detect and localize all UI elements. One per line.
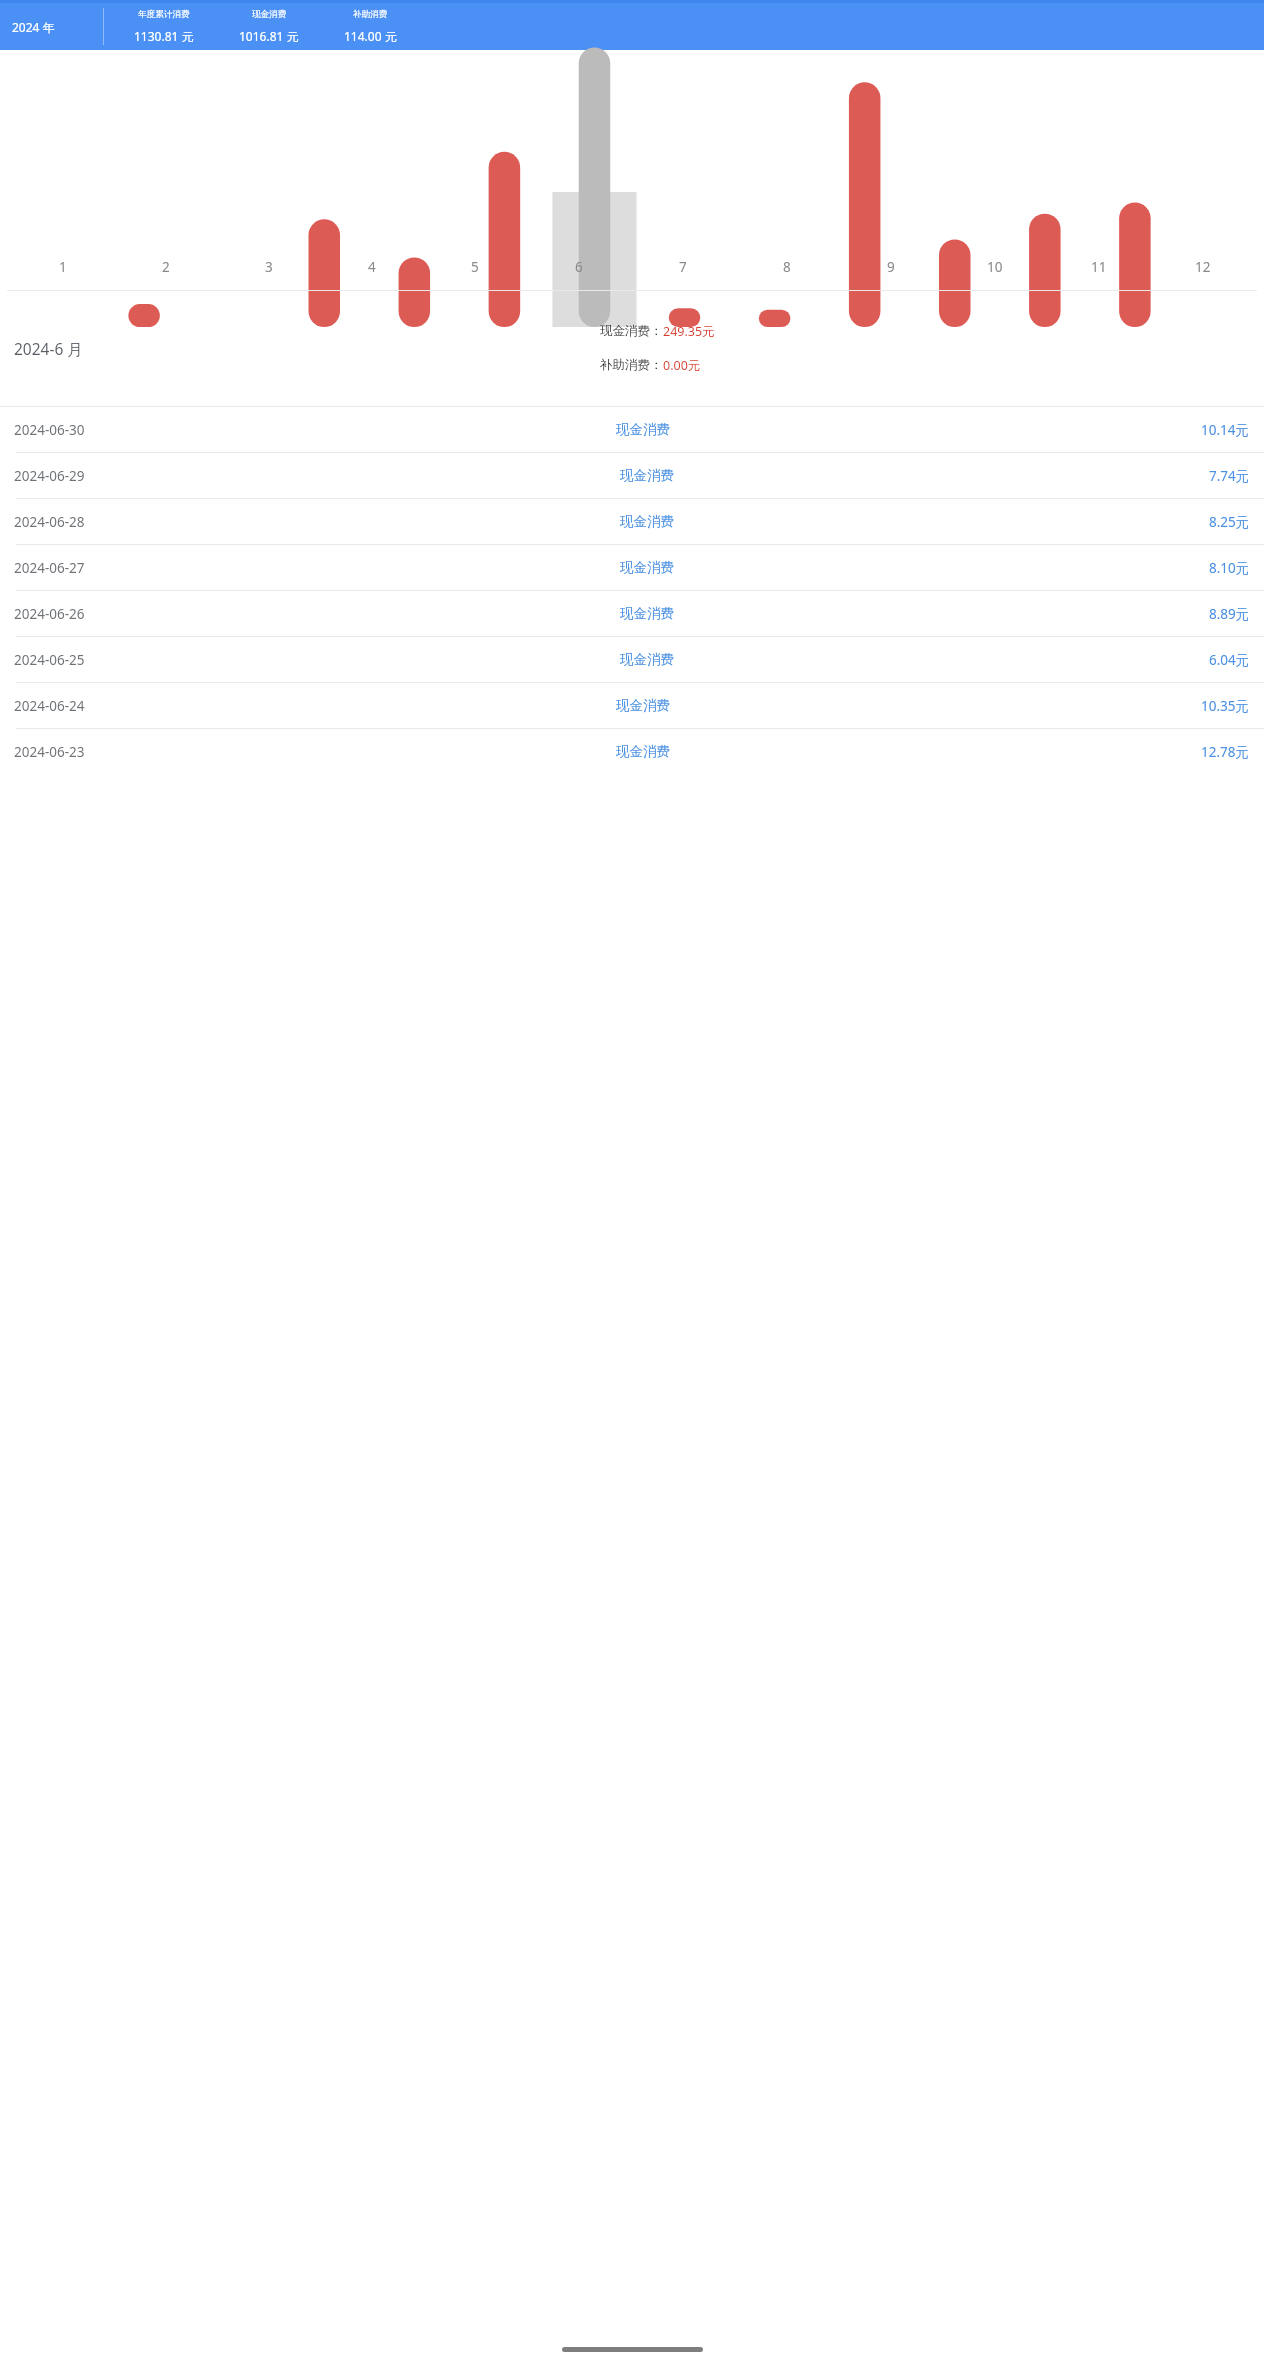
staticText: 1130.81 元: [134, 28, 194, 44]
staticText: 2024 年: [12, 19, 55, 35]
staticText: 2024-06-26: [14, 605, 85, 623]
staticText: 12.78元: [1201, 743, 1250, 761]
staticText: 11: [1091, 258, 1107, 276]
staticText: 补助消费: [353, 9, 388, 20]
staticText: 6: [575, 258, 583, 276]
button[interactable]: 2024-06-23: [0, 729, 1264, 774]
staticText: 2024-06-28: [14, 513, 85, 531]
staticText: 12: [1195, 258, 1211, 276]
staticText: 114.00 元: [344, 28, 397, 44]
staticText: 2024-06-30: [14, 421, 85, 439]
staticText: 现金消费: [616, 697, 670, 714]
staticText: 9: [887, 258, 895, 276]
staticText: 3: [265, 258, 273, 276]
button[interactable]: 2024-06-28: [0, 499, 1264, 544]
staticText: 8.25元: [1209, 513, 1250, 531]
staticText: 年度累计消费: [138, 9, 190, 20]
button[interactable]: 2024-06-25: [0, 637, 1264, 682]
staticText: 2024-06-27: [14, 559, 85, 577]
button[interactable]: 2024-06-27: [0, 545, 1264, 590]
button[interactable]: 2024-06-24: [0, 683, 1264, 728]
staticText: 现金消费: [616, 421, 670, 438]
staticText: 2: [162, 258, 170, 276]
button[interactable]: 2024-06-26: [0, 591, 1264, 636]
staticText: 现金消费: [616, 743, 670, 760]
staticText: 现金消费: [620, 651, 674, 668]
staticText: 现金消费：: [600, 323, 663, 339]
staticText: 现金消费: [620, 559, 674, 576]
staticText: 0.00元: [663, 357, 701, 374]
staticText: 10.35元: [1201, 697, 1250, 715]
staticText: 8.10元: [1209, 559, 1250, 577]
staticText: 补助消费：: [600, 357, 663, 373]
staticText: 7.74元: [1209, 467, 1250, 485]
staticText: 8.89元: [1209, 605, 1250, 623]
staticText: 2024-06-23: [14, 743, 85, 761]
staticText: 现金消费: [620, 467, 674, 484]
staticText: 现金消费: [620, 605, 674, 622]
staticText: 10.14元: [1201, 421, 1250, 439]
button[interactable]: 2024-06-30: [0, 407, 1264, 452]
staticText: 6.04元: [1209, 651, 1250, 669]
staticText: 4: [368, 258, 376, 276]
staticText: 现金消费: [620, 513, 674, 530]
staticText: 2024-06-25: [14, 651, 85, 669]
staticText: 8: [783, 258, 791, 276]
staticText: 10: [987, 258, 1003, 276]
button[interactable]: 2024-06-29: [0, 453, 1264, 498]
staticText: 7: [679, 258, 687, 276]
staticText: 1016.81 元: [239, 28, 299, 44]
staticText: 2024-6 月: [14, 338, 83, 359]
staticText: 5: [471, 258, 479, 276]
staticText: 2024-06-24: [14, 697, 85, 715]
staticText: 2024-06-29: [14, 467, 85, 485]
staticText: 现金消费: [252, 9, 287, 20]
staticText: 1: [59, 258, 67, 276]
staticText: 249.35元: [663, 323, 715, 340]
